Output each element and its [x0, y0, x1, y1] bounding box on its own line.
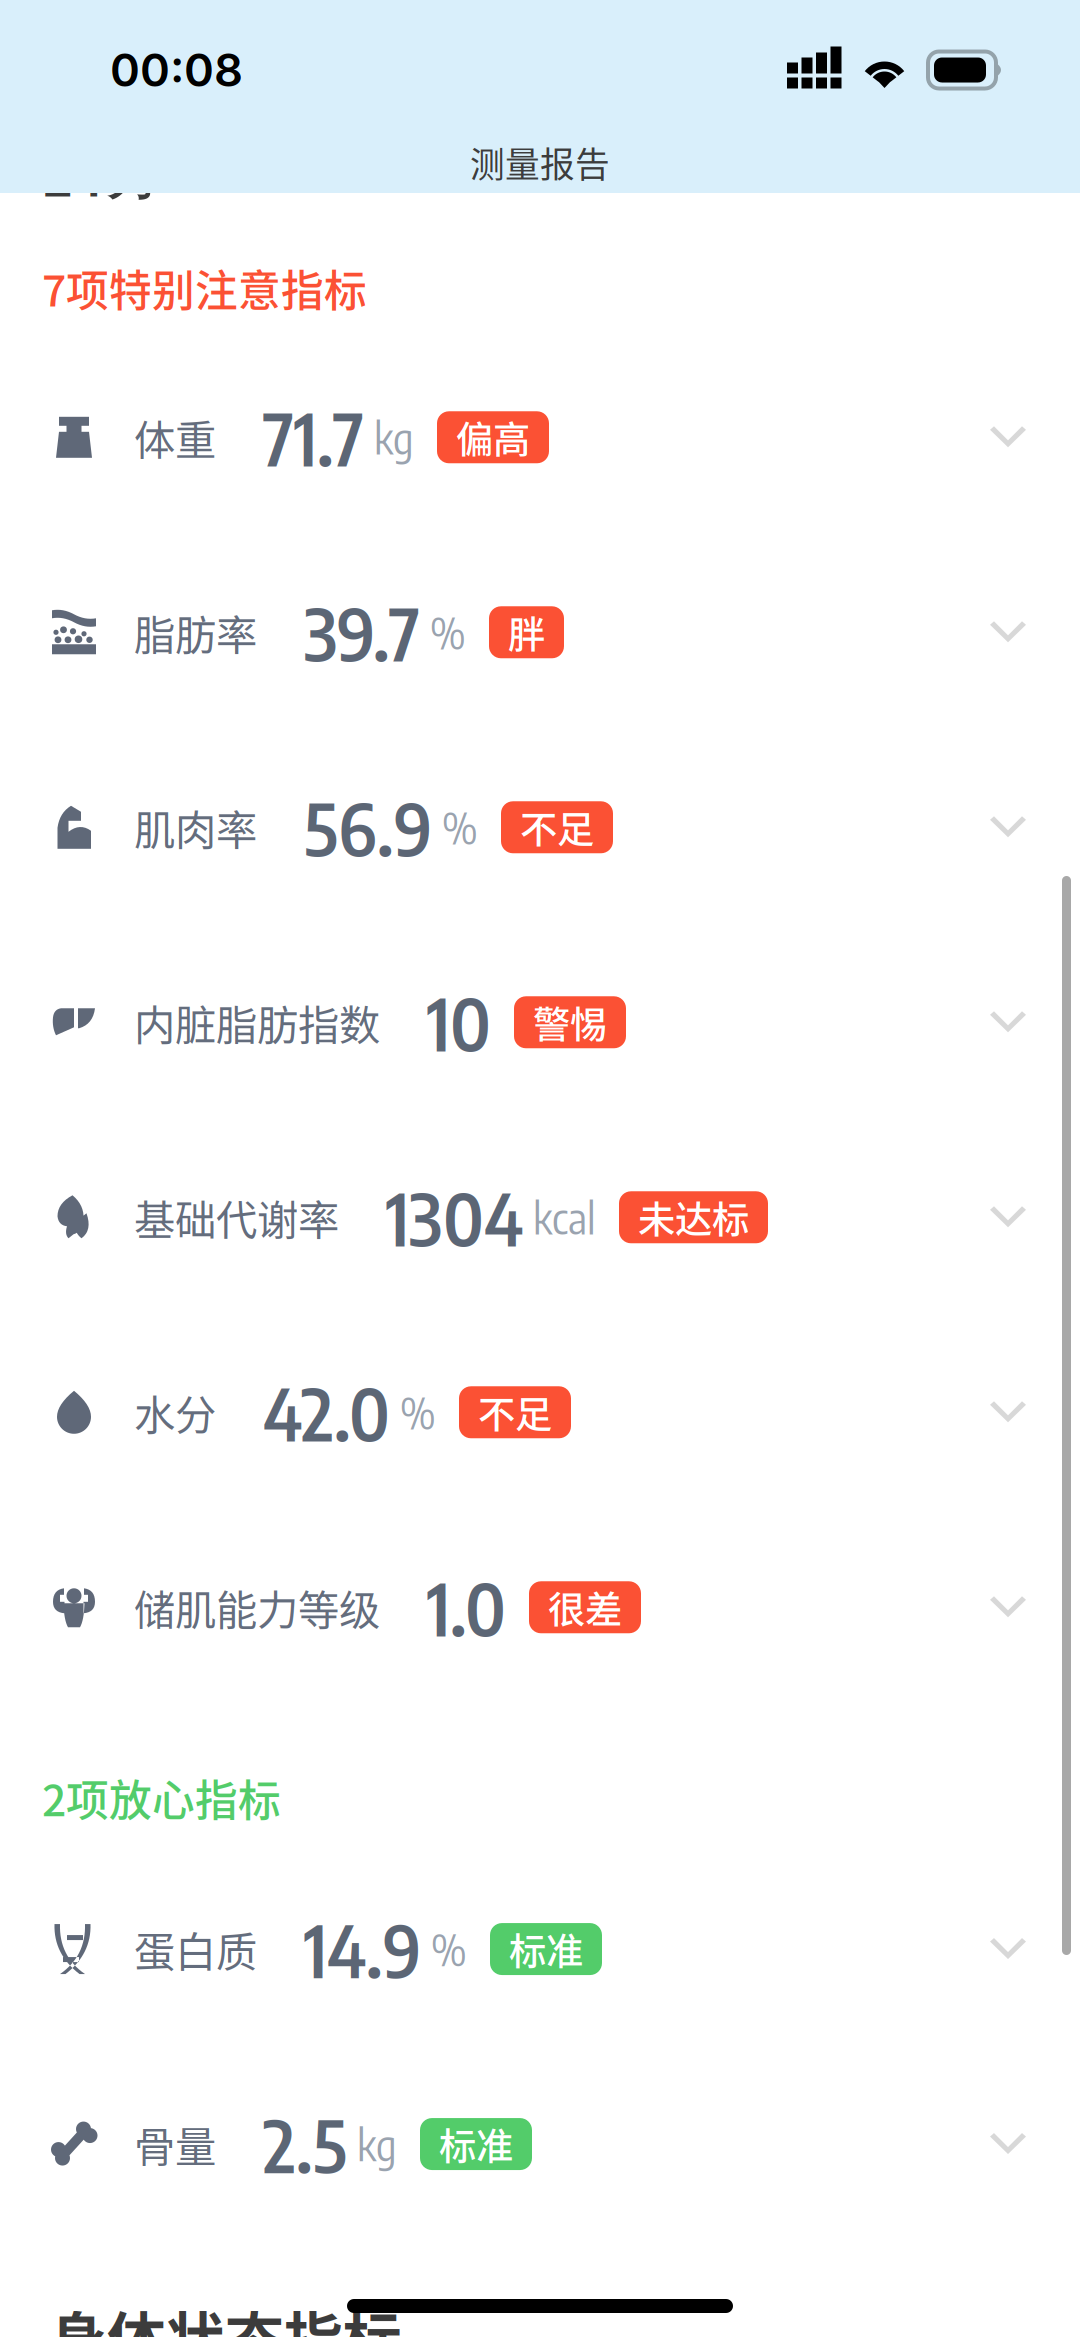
staticText: 水分 — [134, 1382, 216, 1442]
staticText: 42.0 — [263, 1367, 390, 1457]
staticText: 内脏脂肪指数 — [134, 992, 380, 1052]
staticText: 不足 — [478, 1385, 552, 1439]
staticText: kcal — [533, 1191, 596, 1244]
staticText: 7项特别注意指标 — [42, 257, 367, 319]
staticText: 肌肉率 — [134, 797, 257, 857]
staticText: 标准 — [439, 2117, 513, 2171]
button[interactable]: 肌肉率 — [0, 730, 1080, 925]
staticText: 基础代谢率 — [134, 1187, 339, 1247]
staticText: 脂肪率 — [134, 602, 257, 662]
button[interactable]: 基础代谢率 — [0, 1120, 1080, 1315]
staticText: 00:08 — [110, 43, 243, 97]
staticText: 骨量 — [134, 2114, 216, 2174]
staticText: kg — [374, 411, 414, 464]
staticText: % — [442, 801, 478, 854]
button[interactable]: 水分 — [0, 1315, 1080, 1510]
staticText: 测量报告 — [470, 137, 610, 188]
staticText: 很差 — [548, 1580, 622, 1634]
button[interactable]: 体重 — [0, 340, 1080, 535]
button[interactable]: 蛋白质 — [0, 1852, 1080, 2047]
staticText: 标准 — [509, 1922, 583, 1976]
staticText: 2.5 — [263, 2099, 347, 2189]
staticText: 1304 — [386, 1172, 523, 1262]
staticText: 体重 — [134, 407, 216, 467]
staticText: 偏高 — [456, 410, 530, 464]
button[interactable]: 储肌能力等级 — [0, 1510, 1080, 1705]
staticText: 储肌能力等级 — [134, 1577, 380, 1637]
staticText: 1.0 — [427, 1562, 506, 1652]
staticText: 警惕 — [533, 995, 607, 1049]
staticText: % — [400, 1386, 436, 1439]
staticText: % — [430, 606, 466, 659]
staticText: 未达标 — [638, 1190, 749, 1244]
staticText: kg — [357, 2117, 397, 2171]
staticText: 24分 — [44, 133, 165, 210]
button[interactable]: 骨量 — [0, 2047, 1080, 2242]
staticText: 不足 — [520, 800, 594, 854]
staticText: 10 — [427, 977, 491, 1067]
staticText: 71.7 — [263, 392, 364, 482]
staticText: 56.9 — [304, 782, 432, 872]
staticText: 2项放心指标 — [42, 1767, 281, 1829]
staticText: 39.7 — [304, 587, 420, 677]
staticText: % — [431, 1922, 467, 1976]
staticText: 身体状态指标 — [48, 2294, 402, 2337]
button[interactable]: 脂肪率 — [0, 535, 1080, 730]
staticText: 蛋白质 — [134, 1919, 257, 1979]
button[interactable]: 内脏脂肪指数 — [0, 925, 1080, 1120]
staticText: 14.9 — [304, 1904, 421, 1994]
staticText: 胖 — [508, 605, 545, 659]
